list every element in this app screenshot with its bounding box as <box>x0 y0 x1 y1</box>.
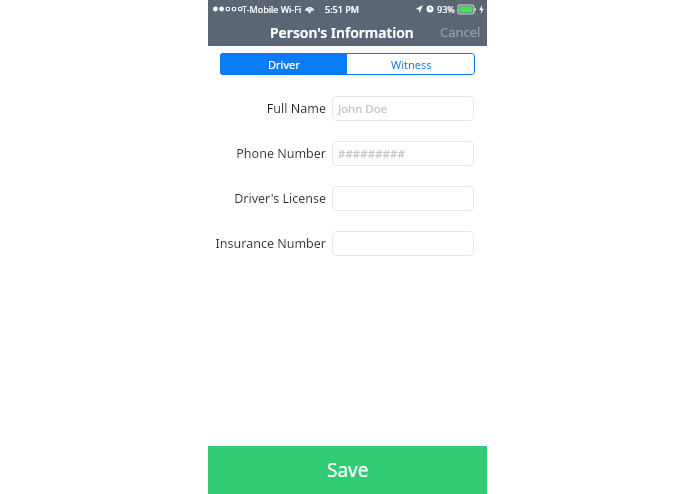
staticText: Witness <box>391 57 432 72</box>
staticText: ######### <box>338 146 405 162</box>
button[interactable]: Driver <box>220 53 347 75</box>
button[interactable]: Witness <box>347 53 475 75</box>
staticText: Insurance Number <box>215 235 326 252</box>
button[interactable] <box>332 186 474 211</box>
staticText: Cancel <box>440 23 481 41</box>
staticText: 5:51 PM <box>325 3 359 15</box>
staticText: Save <box>327 457 369 483</box>
staticText: 93% <box>437 3 455 15</box>
staticText: Driver <box>268 57 300 72</box>
staticText: Phone Number <box>236 145 326 162</box>
button[interactable] <box>332 231 474 256</box>
staticText: John Doe <box>338 101 388 117</box>
button[interactable]: ######### <box>332 141 474 166</box>
staticText: Driver's License <box>234 190 326 207</box>
button[interactable]: Cancel <box>434 19 487 45</box>
staticText: Person's Information <box>270 23 414 42</box>
button[interactable]: John Doe <box>332 96 474 121</box>
staticText: T-Mobile Wi-Fi <box>242 3 302 15</box>
button[interactable]: Save <box>208 446 487 494</box>
staticText: Full Name <box>266 100 326 117</box>
